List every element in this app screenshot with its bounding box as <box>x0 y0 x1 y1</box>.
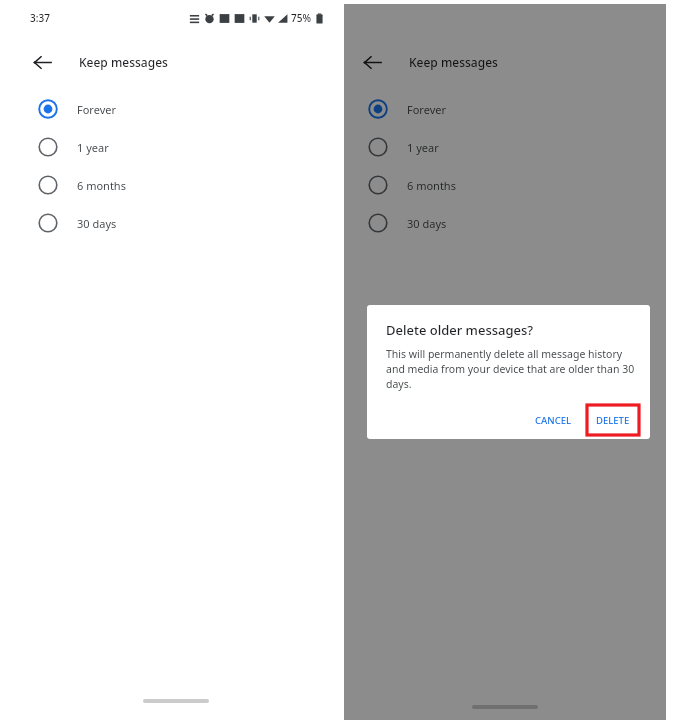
staticText: DELETE <box>596 414 630 427</box>
button[interactable]: 30 days <box>344 204 666 242</box>
button[interactable]: DELETE <box>587 405 639 435</box>
button[interactable]: Forever <box>344 90 666 128</box>
button[interactable]: Back <box>354 44 390 80</box>
staticText: 30 days <box>407 216 447 231</box>
staticText: 30 days <box>77 216 117 231</box>
button[interactable]: 6 months <box>344 166 666 204</box>
staticText: 1 year <box>407 140 439 155</box>
button[interactable]: Back <box>24 44 60 80</box>
staticText: This will permanently delete all message… <box>386 347 635 391</box>
button[interactable]: 6 months <box>14 166 338 204</box>
staticText: Keep messages <box>79 54 168 70</box>
staticText: 3:37 <box>30 11 50 25</box>
button[interactable]: 1 year <box>344 128 666 166</box>
button[interactable]: 1 year <box>14 128 338 166</box>
staticText: Keep messages <box>409 54 498 70</box>
button[interactable]: 30 days <box>14 204 338 242</box>
staticText: 1 year <box>77 140 109 155</box>
staticText: 6 months <box>407 178 456 193</box>
staticText: 6 months <box>77 178 126 193</box>
button[interactable]: CANCEL <box>526 409 581 432</box>
button[interactable]: Forever <box>14 90 338 128</box>
staticText: 75% <box>291 11 311 25</box>
staticText: Forever <box>407 102 447 117</box>
staticText: Delete older messages? <box>386 321 534 339</box>
staticText: CANCEL <box>535 414 572 427</box>
staticText: Forever <box>77 102 117 117</box>
